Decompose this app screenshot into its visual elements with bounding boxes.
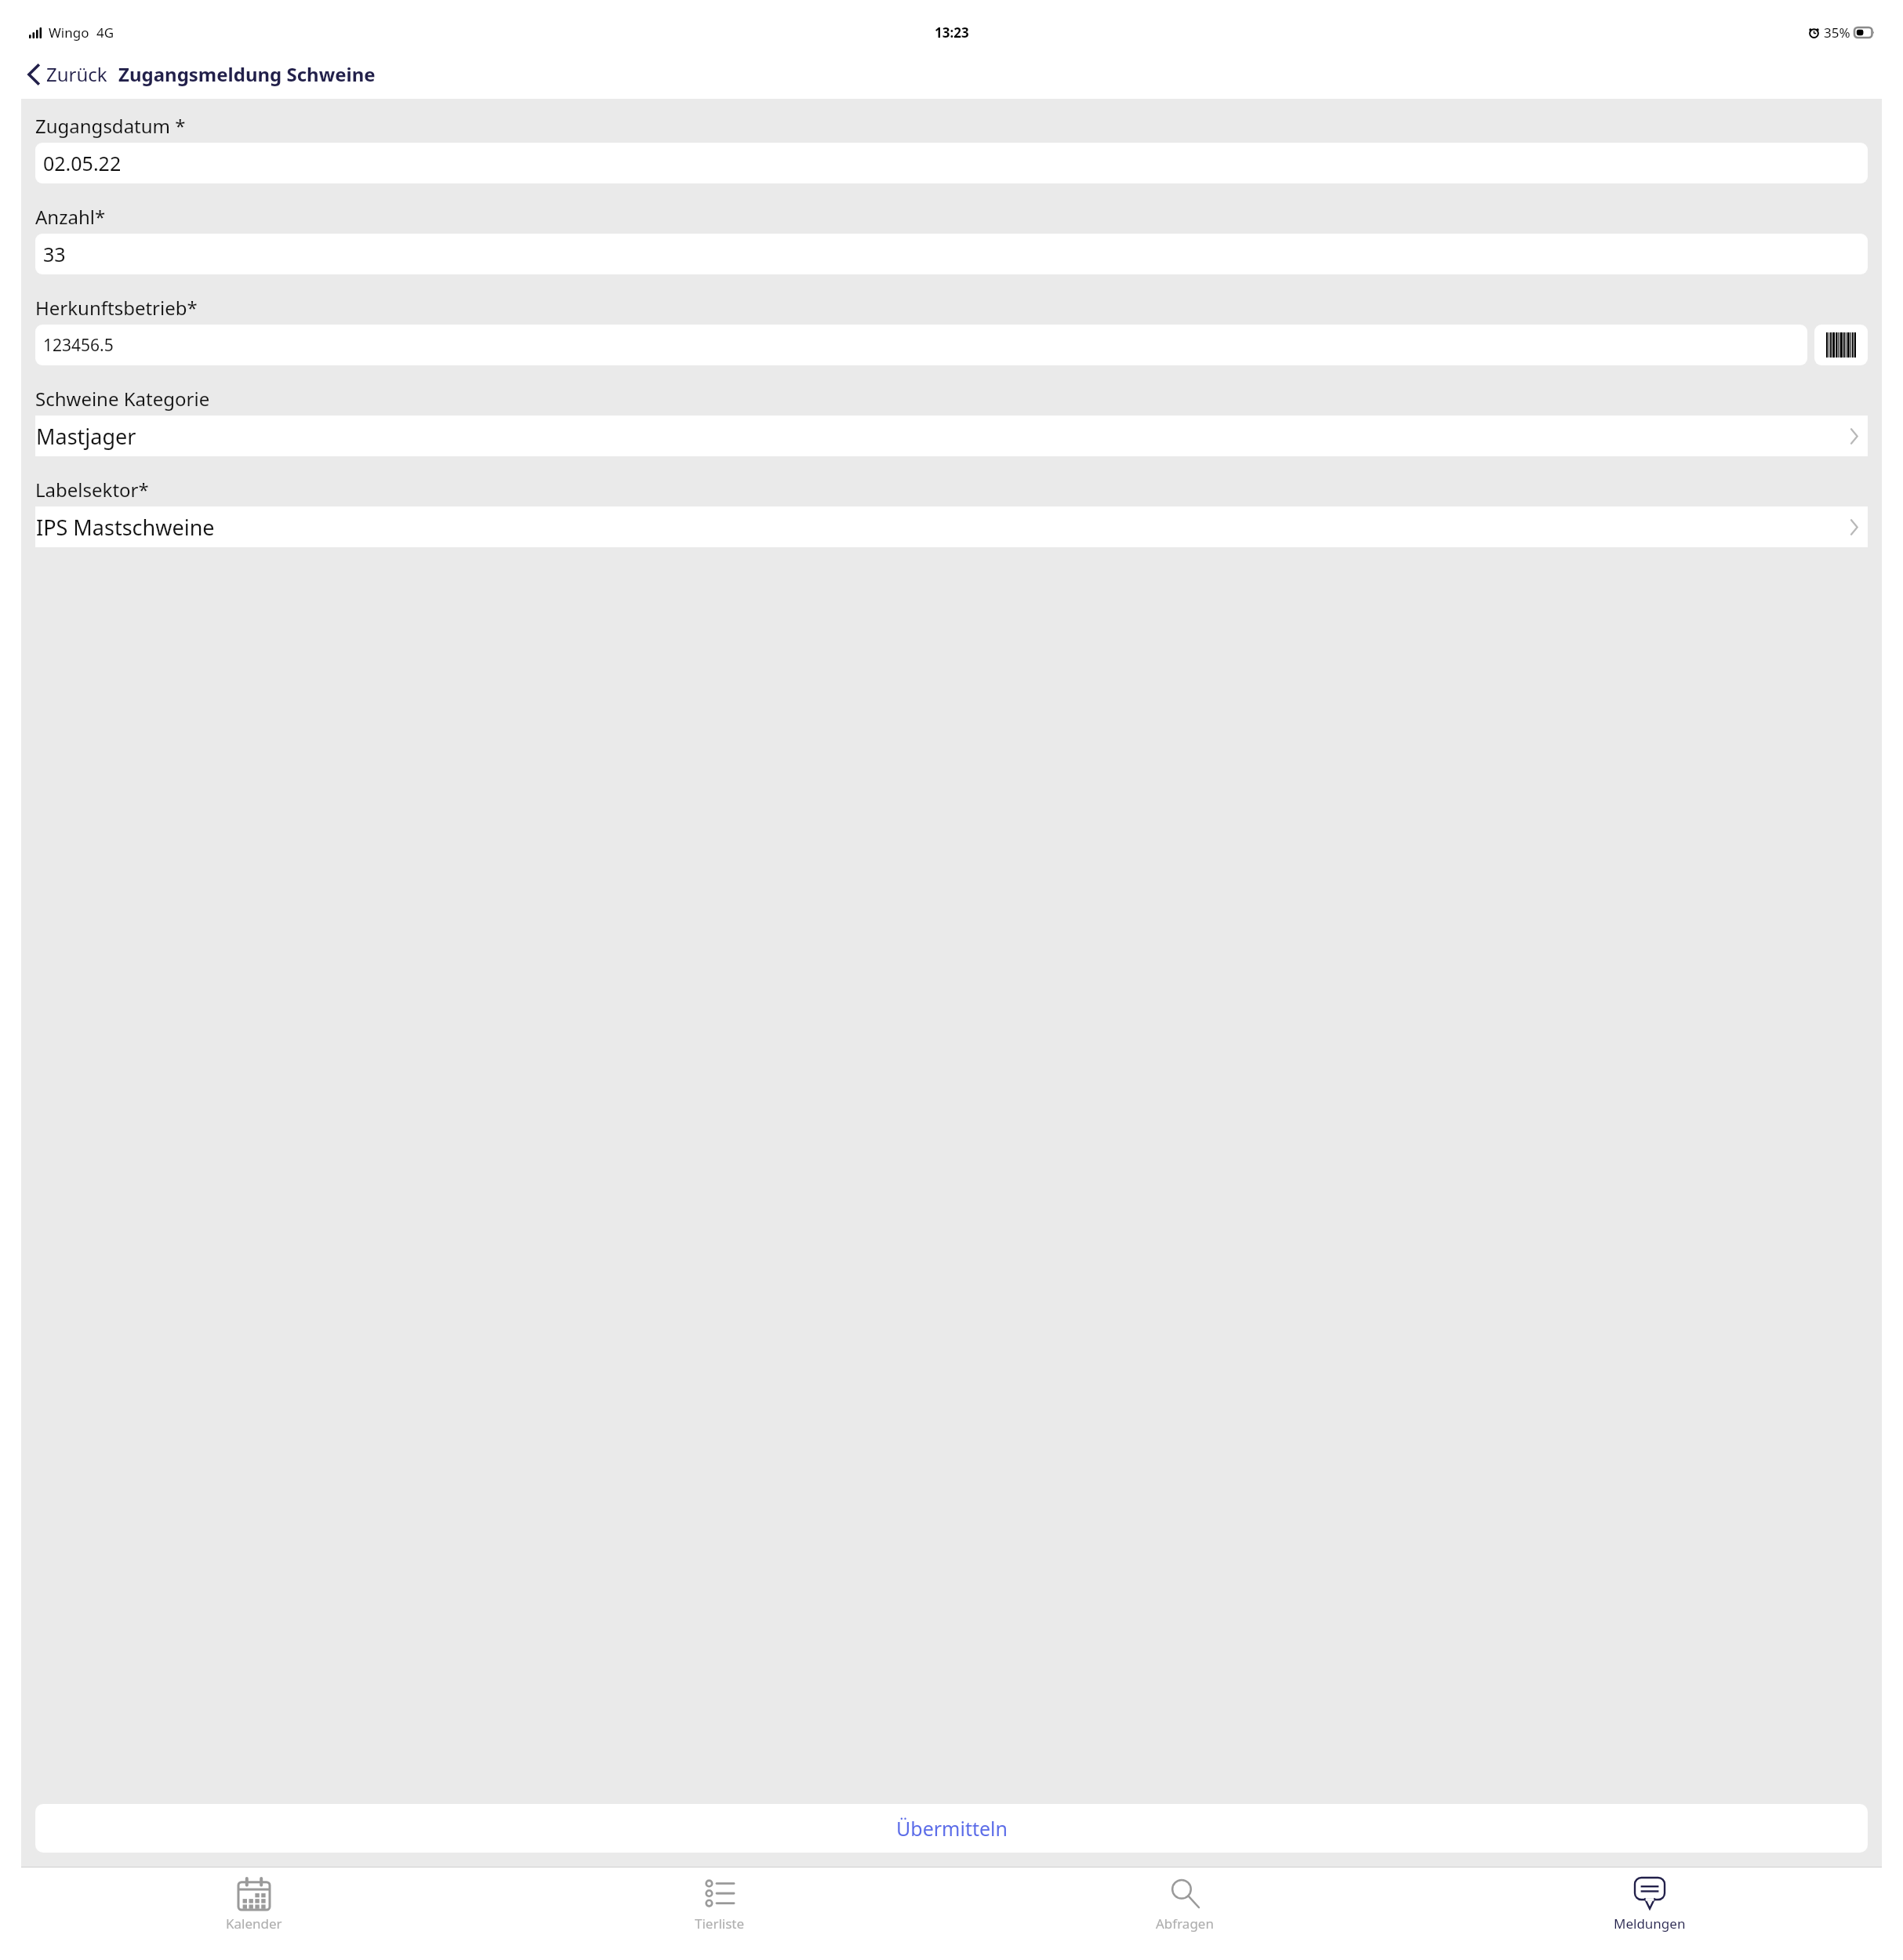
button[interactable]: Zurück [24, 58, 111, 90]
staticText: Zurück [46, 61, 107, 87]
button[interactable]: Übermitteln [35, 1804, 1868, 1853]
button[interactable]: Mastjager [35, 416, 1868, 456]
staticText: Labelsektor* [35, 477, 149, 503]
staticText: Mastjager [36, 422, 1850, 451]
button[interactable]: 02.05.22 [35, 143, 1868, 183]
staticText: 33 [43, 241, 66, 267]
staticText: Schweine Kategorie [35, 386, 210, 412]
button[interactable]: Tierliste [487, 1867, 952, 1960]
staticText: IPS Mastschweine [36, 513, 1850, 542]
button[interactable]: Meldungen [1417, 1867, 1882, 1960]
staticText: Kalender [226, 1915, 282, 1933]
staticText: Meldungen [1614, 1915, 1686, 1933]
button[interactable]: Kalender [21, 1867, 487, 1960]
staticText: 4G [96, 24, 114, 42]
button[interactable]: Barcode scannen [1814, 325, 1868, 365]
staticText: Zugangsdatum * [35, 113, 186, 139]
staticText: Übermitteln [896, 1815, 1008, 1842]
staticText: 13:23 [935, 24, 969, 42]
button[interactable]: 123456.5 [35, 325, 1807, 365]
staticText: 35% [1824, 24, 1850, 42]
staticText: 123456.5 [43, 334, 114, 357]
button[interactable]: 33 [35, 234, 1868, 274]
staticText: Tierliste [695, 1915, 745, 1933]
staticText: Anzahl* [35, 204, 106, 230]
staticText: Zugangsmeldung Schweine [118, 61, 376, 87]
button[interactable]: Abfragen [952, 1867, 1417, 1960]
staticText: Abfragen [1156, 1915, 1214, 1933]
staticText: Herkunftsbetrieb* [35, 295, 198, 321]
button[interactable]: IPS Mastschweine [35, 506, 1868, 547]
staticText: Wingo [49, 24, 89, 42]
staticText: 02.05.22 [43, 150, 122, 176]
